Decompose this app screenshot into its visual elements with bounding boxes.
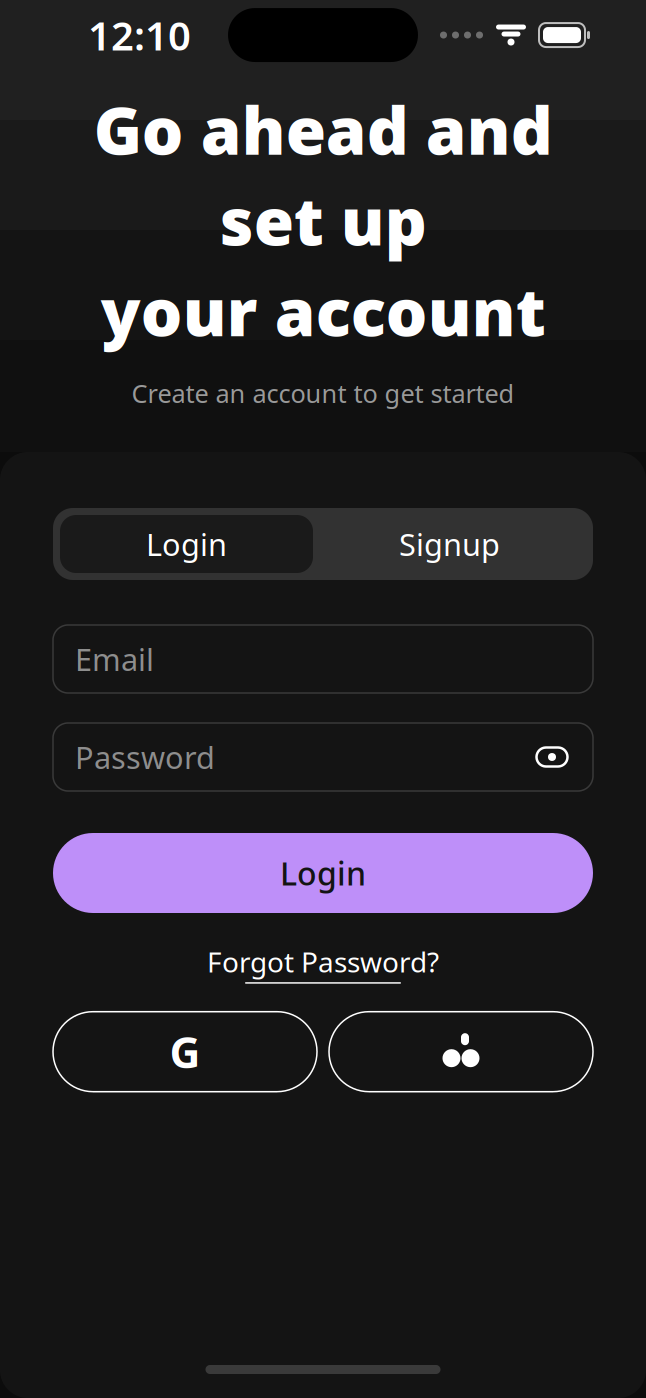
- staticText: Login: [280, 852, 366, 894]
- staticText: Email: [75, 639, 154, 679]
- staticText: Create an account to get started: [131, 376, 514, 410]
- button[interactable]: Password: [53, 723, 593, 791]
- staticText: Login: [146, 524, 227, 564]
- staticText: 12:10: [88, 8, 191, 62]
- button[interactable]: Forgot Password?: [207, 943, 439, 984]
- button[interactable]: Login: [53, 833, 593, 913]
- button[interactable]: Continue with Apple: [329, 1012, 593, 1092]
- staticText: Go ahead and set up your account: [93, 86, 552, 354]
- button[interactable]: Login: [60, 515, 313, 573]
- button[interactable]: Continue with Google: [53, 1012, 317, 1092]
- staticText: Signup: [399, 524, 500, 564]
- button[interactable]: Signup: [313, 515, 586, 573]
- button[interactable]: Email: [53, 625, 593, 693]
- staticText: G: [169, 1023, 200, 1080]
- staticText: Password: [75, 737, 215, 777]
- staticText: Forgot Password?: [207, 943, 439, 980]
